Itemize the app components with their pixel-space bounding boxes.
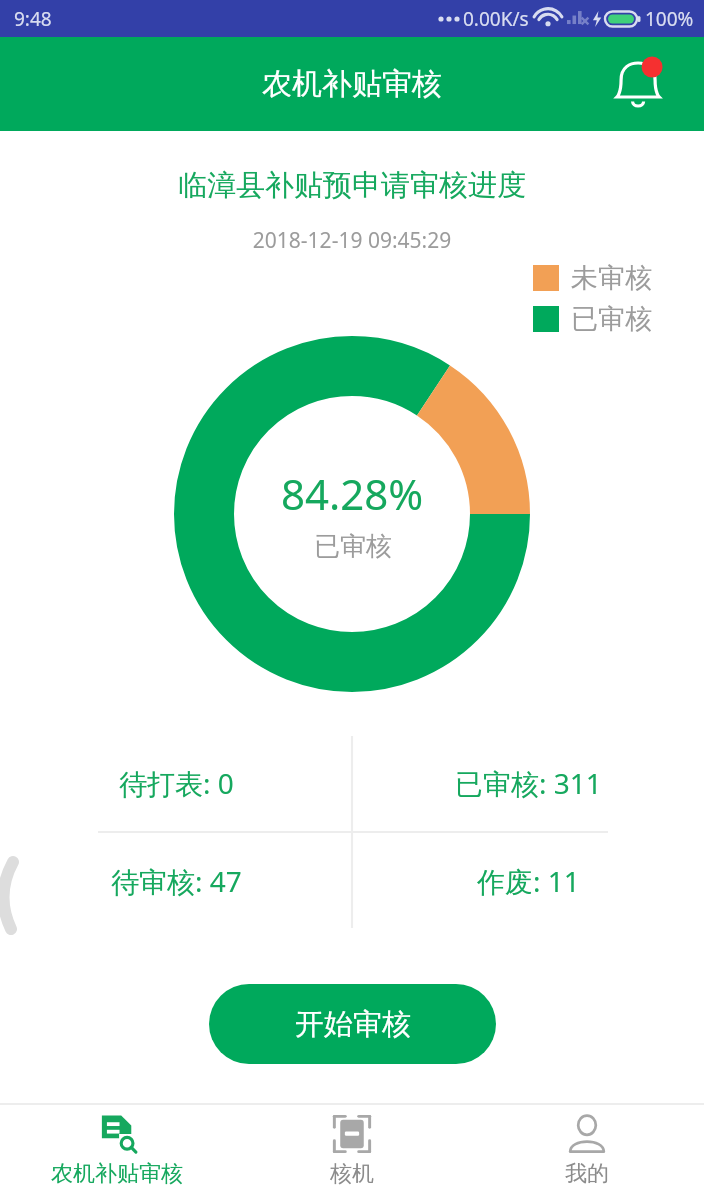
staticText: 84.28%	[281, 465, 424, 522]
staticText: 农机补贴审核	[262, 65, 442, 103]
staticText: 2018-12-19 09:45:29	[0, 226, 704, 255]
button[interactable]: 已审核: 311	[352, 734, 704, 832]
staticText: 我的	[565, 1160, 609, 1188]
button[interactable]: 农机补贴审核	[0, 1105, 234, 1197]
button[interactable]: 我的	[469, 1105, 704, 1197]
staticText: 临漳县补贴预申请审核进度	[0, 167, 704, 204]
staticText: 已审核	[314, 530, 392, 563]
staticText: 未审核	[571, 261, 652, 295]
button[interactable]: 待审核: 47	[0, 832, 352, 930]
staticText: 100%	[645, 6, 694, 32]
staticText: 待审核: 47	[111, 862, 242, 900]
button[interactable]: 作废: 11	[352, 832, 704, 930]
staticText: 农机补贴审核	[51, 1160, 183, 1188]
staticText: 待打表: 0	[119, 764, 234, 802]
staticText: 已审核: 311	[455, 764, 602, 802]
staticText: 开始审核	[295, 1006, 411, 1043]
button[interactable]: 待打表: 0	[0, 734, 352, 832]
staticText: 作废: 11	[477, 862, 580, 900]
staticText: 0.00K/s	[463, 6, 529, 32]
staticText: 核机	[330, 1160, 374, 1188]
button[interactable]: 核机	[234, 1105, 469, 1197]
staticText: 9:48	[14, 6, 52, 32]
button[interactable]: Notifications	[616, 60, 664, 108]
button[interactable]: 开始审核	[209, 984, 496, 1064]
staticText: 已审核	[571, 302, 652, 336]
